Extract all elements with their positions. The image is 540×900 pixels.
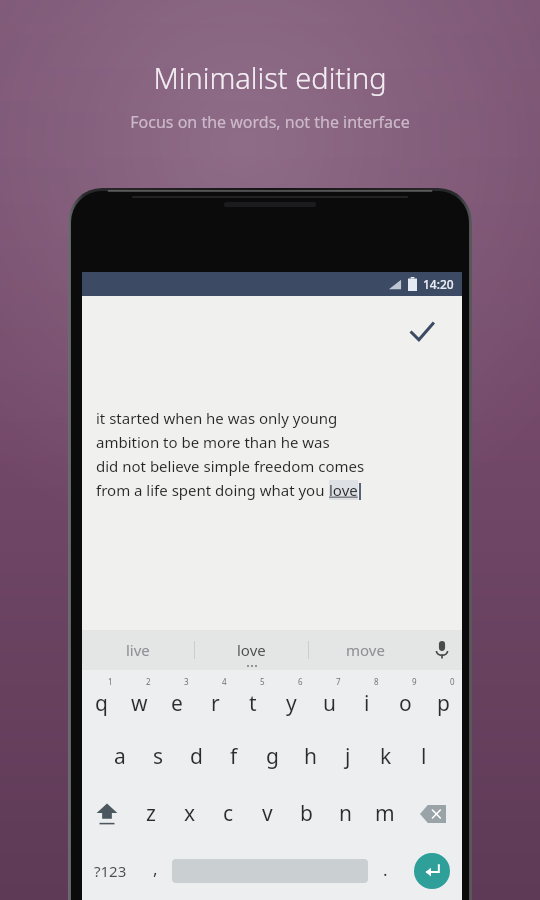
staticText: 6 <box>298 676 303 687</box>
button[interactable]: Space <box>172 842 368 900</box>
staticText: 9 <box>412 676 417 687</box>
button[interactable]: love <box>195 630 308 670</box>
button[interactable]: 4 <box>196 670 234 728</box>
button[interactable]: l <box>405 728 443 785</box>
staticText: 14:20 <box>423 276 454 292</box>
staticText: x <box>184 799 196 828</box>
staticText: live <box>126 640 150 660</box>
staticText: m <box>375 799 395 828</box>
button[interactable]: m <box>365 785 404 842</box>
staticText: a <box>114 742 126 771</box>
staticText: from a life spent doing what you <box>96 480 329 500</box>
staticText: 5 <box>260 676 265 687</box>
staticText: s <box>153 742 164 771</box>
staticText: q <box>95 689 108 718</box>
staticText: y <box>286 689 297 718</box>
button[interactable]: . <box>368 842 402 900</box>
staticText: n <box>339 799 352 828</box>
staticText: g <box>266 742 279 771</box>
button[interactable]: 8 <box>348 670 386 728</box>
staticText: w <box>131 689 148 718</box>
button[interactable]: 2 <box>120 670 158 728</box>
staticText: it started when he was only young <box>96 408 338 428</box>
staticText: move <box>346 640 385 660</box>
button[interactable]: j <box>329 728 367 785</box>
button[interactable]: b <box>287 785 326 842</box>
staticText: , <box>153 857 158 880</box>
staticText: h <box>304 742 317 771</box>
staticText: 2 <box>146 676 151 687</box>
button[interactable]: x <box>170 785 209 842</box>
staticText: v <box>262 799 273 828</box>
button[interactable]: Save note <box>400 310 444 354</box>
staticText: j <box>345 742 351 771</box>
staticText: k <box>380 742 392 771</box>
staticText: r <box>211 689 220 718</box>
staticText: 1 <box>108 676 113 687</box>
button[interactable]: k <box>367 728 405 785</box>
button[interactable]: Enter <box>402 842 462 900</box>
button[interactable]: it started when he was only young <box>96 408 462 500</box>
staticText: o <box>399 689 412 718</box>
button[interactable]: v <box>248 785 287 842</box>
staticText: z <box>146 799 156 828</box>
button[interactable]: 3 <box>158 670 196 728</box>
button[interactable]: c <box>209 785 248 842</box>
button[interactable]: 6 <box>272 670 310 728</box>
staticText: love <box>329 480 358 500</box>
staticText: d <box>190 742 203 771</box>
staticText: love <box>237 640 266 660</box>
button[interactable]: 7 <box>310 670 348 728</box>
staticText: u <box>323 689 336 718</box>
staticText: Focus on the words, not the interface <box>130 111 410 133</box>
button[interactable]: 1 <box>82 670 120 728</box>
staticText: 7 <box>336 676 341 687</box>
staticText: l <box>421 742 427 771</box>
button[interactable]: n <box>326 785 365 842</box>
button[interactable]: d <box>177 728 215 785</box>
staticText: f <box>230 742 238 771</box>
button[interactable]: ?123 <box>82 842 138 900</box>
button[interactable]: s <box>139 728 177 785</box>
button[interactable]: live <box>82 630 194 670</box>
button[interactable]: Shift <box>82 785 131 842</box>
staticText: p <box>437 689 450 718</box>
button[interactable]: z <box>131 785 170 842</box>
button[interactable]: h <box>291 728 329 785</box>
staticText: Minimalist editing <box>153 58 387 97</box>
button[interactable]: , <box>138 842 172 900</box>
button[interactable]: f <box>215 728 253 785</box>
staticText: 0 <box>450 676 455 687</box>
staticText: 4 <box>222 676 227 687</box>
staticText: . <box>383 858 388 881</box>
staticText: ?123 <box>94 861 127 881</box>
button[interactable]: Voice input <box>422 630 462 670</box>
button[interactable]: Backspace <box>404 785 462 842</box>
button[interactable]: 0 <box>424 670 462 728</box>
button[interactable]: move <box>309 630 422 670</box>
staticText: ambition to be more than he was <box>96 432 330 452</box>
staticText: e <box>171 689 183 718</box>
staticText: c <box>223 799 234 828</box>
button[interactable]: 5 <box>234 670 272 728</box>
button[interactable]: 9 <box>386 670 424 728</box>
staticText: t <box>249 689 257 718</box>
staticText: 3 <box>184 676 189 687</box>
staticText: b <box>300 799 313 828</box>
staticText: i <box>364 689 370 718</box>
button[interactable]: a <box>101 728 139 785</box>
staticText: 8 <box>374 676 379 687</box>
button[interactable]: g <box>253 728 291 785</box>
staticText: did not believe simple freedom comes <box>96 456 365 476</box>
